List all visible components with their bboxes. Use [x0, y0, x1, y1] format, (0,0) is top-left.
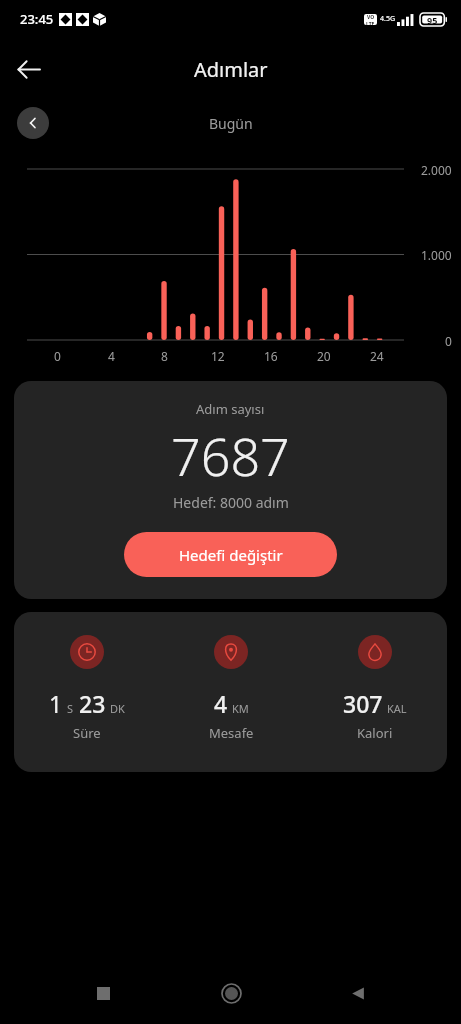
staticText: S	[67, 701, 74, 716]
staticText: 1.000	[421, 247, 452, 263]
staticText: Süre	[73, 724, 101, 742]
staticText: LTE	[366, 21, 375, 25]
staticText: 24	[370, 348, 384, 364]
staticText: Bugün	[209, 114, 253, 133]
staticText: Hedef: 8000 adım	[173, 493, 289, 512]
button[interactable]: Previous day	[17, 107, 49, 139]
button[interactable]: Home	[207, 969, 255, 1017]
staticText: VO	[367, 14, 375, 21]
staticText: 4	[108, 348, 115, 364]
staticText: 4	[214, 688, 228, 719]
staticText: Adımlar	[194, 56, 268, 83]
button[interactable]: Back	[334, 969, 382, 1017]
staticText: 307	[343, 688, 383, 719]
button[interactable]: Hedefi değiştir	[124, 532, 337, 577]
staticText: KAL	[387, 701, 407, 716]
staticText: 4.5G	[380, 14, 395, 24]
button[interactable]: 1	[14, 635, 159, 742]
staticText: 20	[317, 348, 331, 364]
button[interactable]: 4	[159, 635, 303, 742]
staticText: KM	[232, 701, 249, 716]
button[interactable]: Adım sayısı	[14, 381, 447, 599]
staticText: 2.000	[421, 162, 452, 178]
staticText: Adım sayısı	[196, 400, 265, 418]
staticText: 95	[427, 14, 438, 26]
staticText: 23:45	[20, 10, 54, 28]
staticText: Mesafe	[209, 724, 254, 742]
staticText: 1	[49, 688, 63, 719]
staticText: 23	[79, 688, 106, 719]
staticText: Hedefi değiştir	[179, 545, 283, 565]
staticText: 12	[211, 348, 225, 364]
staticText: 8	[161, 348, 168, 364]
button[interactable]: Recents	[79, 969, 127, 1017]
staticText: 0	[445, 333, 452, 349]
button[interactable]: Back	[4, 45, 52, 93]
staticText: 7687	[171, 420, 290, 491]
staticText: 16	[264, 348, 278, 364]
button[interactable]: 307	[303, 635, 447, 742]
staticText: Kalori	[357, 724, 393, 742]
staticText: 0	[54, 348, 61, 364]
staticText: DK	[110, 701, 125, 716]
